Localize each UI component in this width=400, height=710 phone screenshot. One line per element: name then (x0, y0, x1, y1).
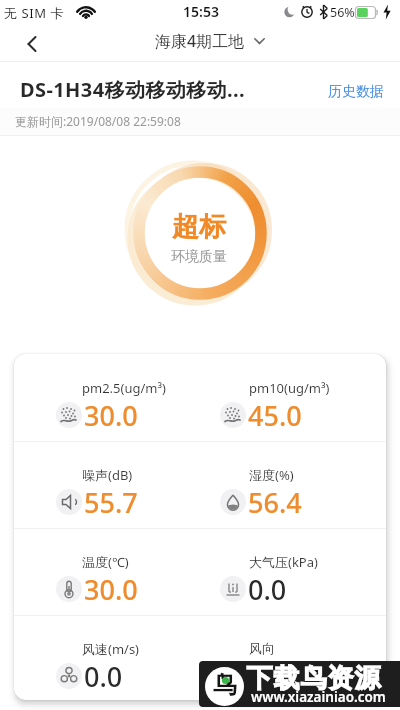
button[interactable] (204, 528, 374, 615)
staticText: 环境质量 (171, 248, 227, 266)
staticText: 15:53 (183, 2, 219, 21)
staticText: pm2.5(ug/m³) (82, 379, 166, 397)
staticText: 下载鸟资源 (246, 662, 381, 695)
staticText: 湿度(%) (249, 466, 294, 484)
staticText: 45.0 (248, 397, 302, 434)
staticText: 0.0 (248, 571, 287, 608)
button[interactable] (204, 354, 374, 441)
staticText: 温度(℃) (82, 553, 129, 571)
button[interactable]: 历史数据 (322, 82, 392, 104)
staticText: DS-1H34移动移动移动... (20, 76, 245, 103)
staticText: 30.0 (84, 397, 138, 434)
staticText: 大气压(kPa) (249, 553, 318, 571)
button[interactable] (10, 28, 54, 60)
staticText: 55.7 (84, 484, 138, 521)
staticText: 鸟 (213, 670, 237, 700)
staticText: 56.4 (248, 484, 302, 521)
staticText: 无 SIM 卡 (4, 4, 65, 22)
button[interactable] (34, 528, 204, 615)
staticText: 30.0 (84, 571, 138, 608)
staticText: 风向 (249, 640, 275, 656)
button[interactable] (204, 615, 374, 700)
staticText: 海康4期工地 (155, 30, 245, 52)
button[interactable] (204, 441, 374, 528)
button[interactable] (34, 441, 204, 528)
staticText: 56% (330, 4, 355, 21)
staticText: 0.0 (248, 658, 287, 695)
staticText: 风速(m/s) (82, 640, 140, 658)
staticText: 更新时间:2019/08/08 22:59:08 (15, 113, 181, 129)
staticText: 噪声(dB) (82, 466, 133, 484)
staticText: www.xiazainiao.com (251, 688, 386, 706)
staticText: 超标 (172, 210, 226, 244)
button[interactable] (34, 615, 204, 700)
staticText: pm10(ug/m³) (249, 379, 330, 397)
staticText: 历史数据 (328, 83, 384, 101)
staticText: 0.0 (84, 658, 123, 695)
button[interactable]: 海康4期工地 (155, 29, 265, 53)
button[interactable] (34, 354, 204, 441)
button[interactable]: 鸟 (199, 661, 400, 707)
